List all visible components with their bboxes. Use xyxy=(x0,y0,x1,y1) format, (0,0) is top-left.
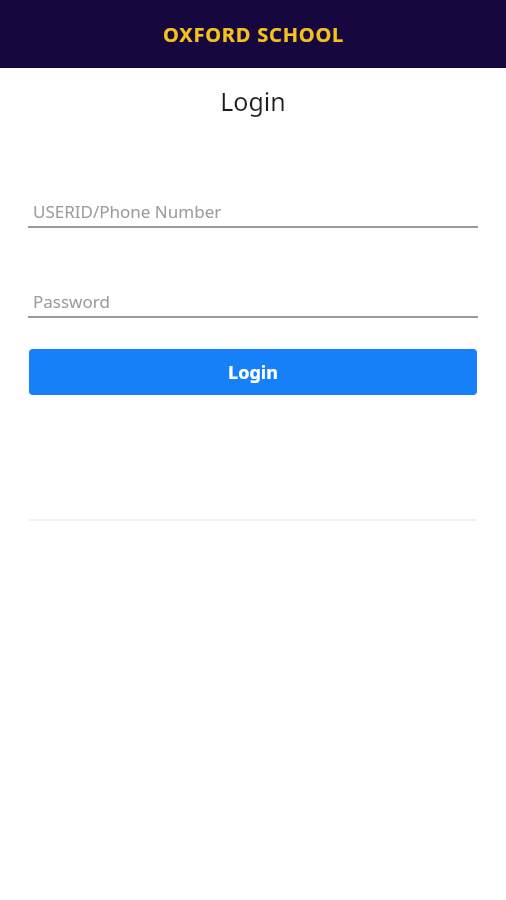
staticText: USERID/Phone Number xyxy=(33,200,222,223)
staticText: OXFORD SCHOOL xyxy=(163,21,344,48)
button[interactable]: USERID or Phone Number input field xyxy=(28,196,478,228)
staticText: Login xyxy=(228,360,278,385)
button[interactable]: Login xyxy=(29,349,477,395)
staticText: Login xyxy=(220,84,286,118)
staticText: Password xyxy=(33,290,110,313)
button[interactable]: Password input field xyxy=(28,286,478,318)
